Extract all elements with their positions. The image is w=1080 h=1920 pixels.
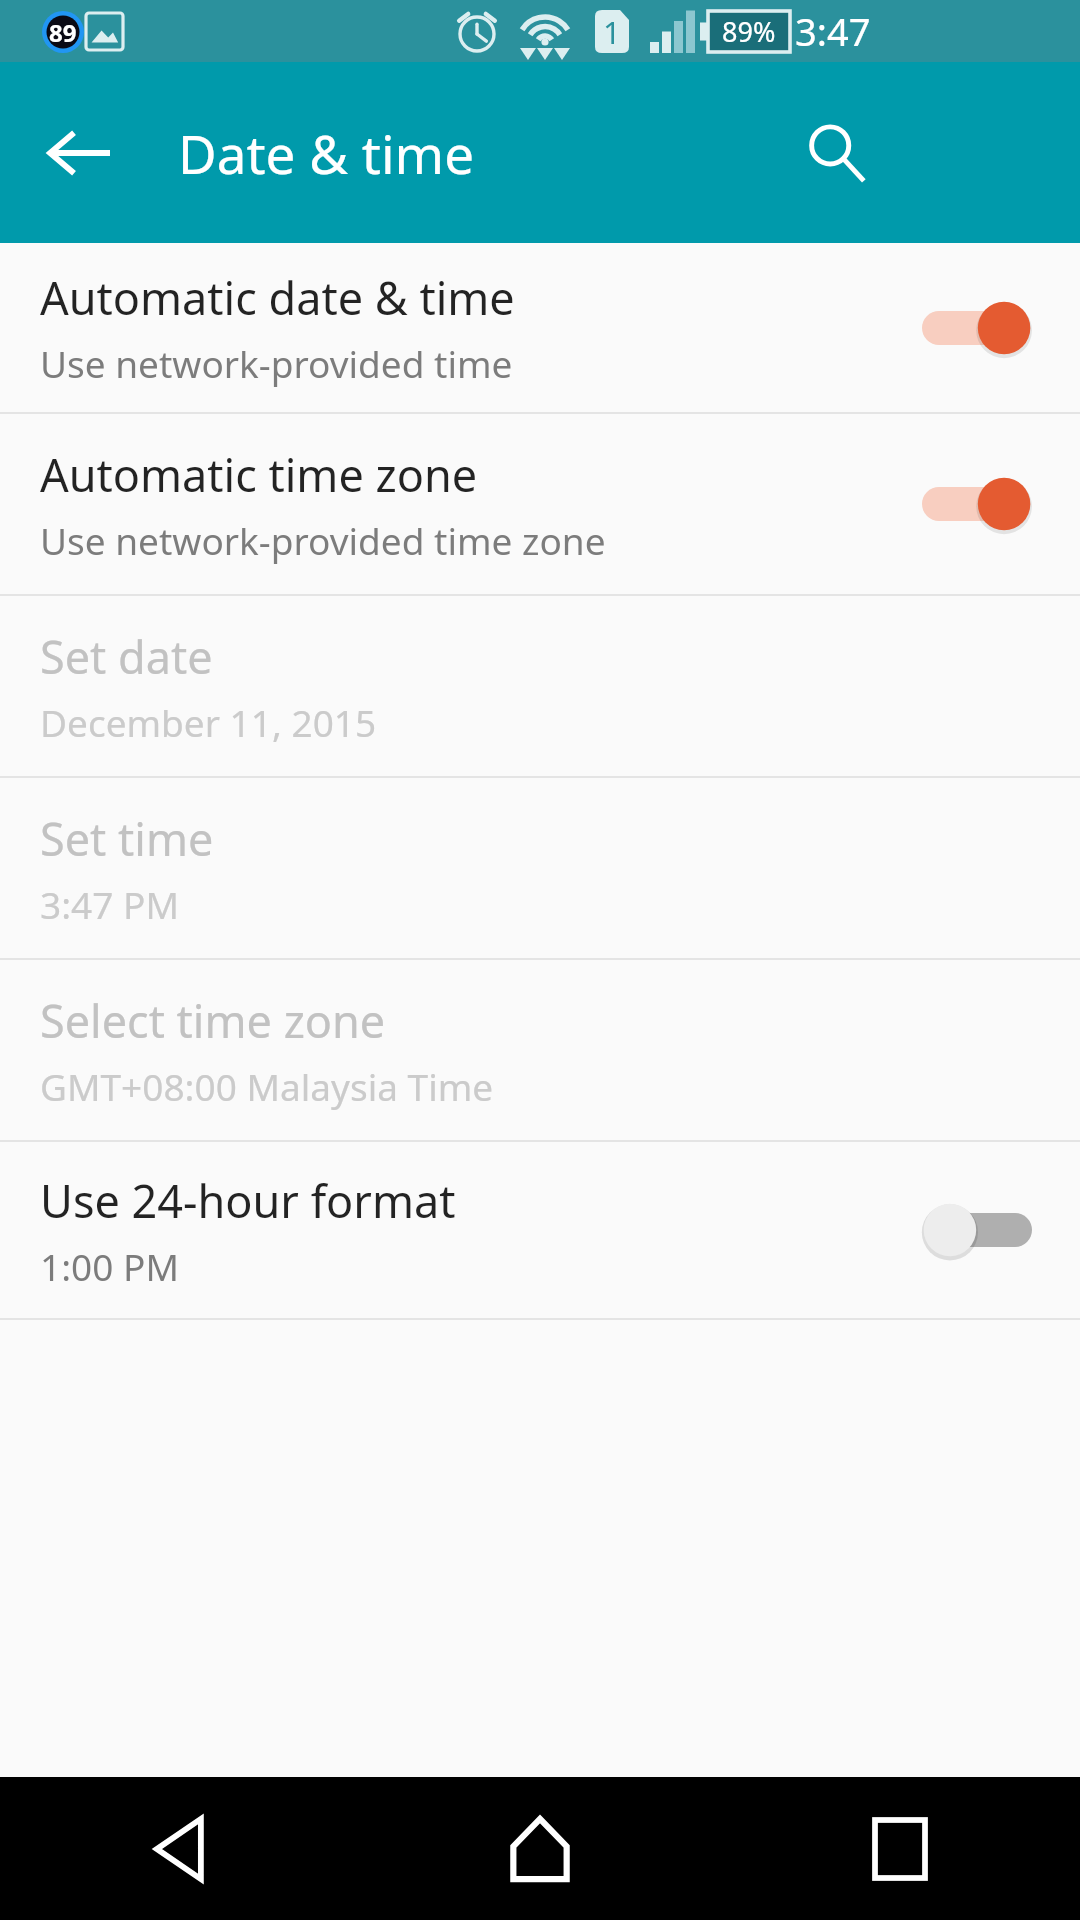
staticText: Automatic date & time [40,267,515,328]
staticText: GMT+08:00 Malaysia Time [40,1061,494,1111]
button[interactable]: Automatic time zone [0,414,1080,594]
button[interactable]: Navigate up [22,62,136,243]
button[interactable]: Recent apps [720,1777,1080,1920]
button[interactable]: Set time [0,778,1080,958]
staticText: Use network-provided time [40,338,513,388]
staticText: Use network-provided time zone [40,515,606,565]
button[interactable]: Search [774,83,898,223]
staticText: 89 [49,16,77,48]
staticText: 3:47 [795,5,871,57]
button[interactable]: Back [0,1777,360,1920]
button[interactable]: Set date [0,596,1080,776]
staticText: Use 24-hour format [40,1170,456,1231]
staticText: 1 [603,11,621,53]
button[interactable]: Select time zone [0,960,1080,1140]
staticText: December 11, 2015 [40,697,377,747]
staticText: 89% [722,13,776,50]
staticText: 1:00 PM [40,1241,179,1291]
staticText: Automatic time zone [40,444,478,505]
staticText: Set date [40,626,213,687]
staticText: Set time [40,808,214,869]
staticText: Select time zone [40,990,386,1051]
staticText: Date & time [178,117,475,189]
button[interactable]: Automatic date & time [0,243,1080,412]
staticText: 3:47 PM [40,879,179,929]
button[interactable]: Use 24-hour format [0,1142,1080,1318]
button[interactable]: Home [360,1777,720,1920]
